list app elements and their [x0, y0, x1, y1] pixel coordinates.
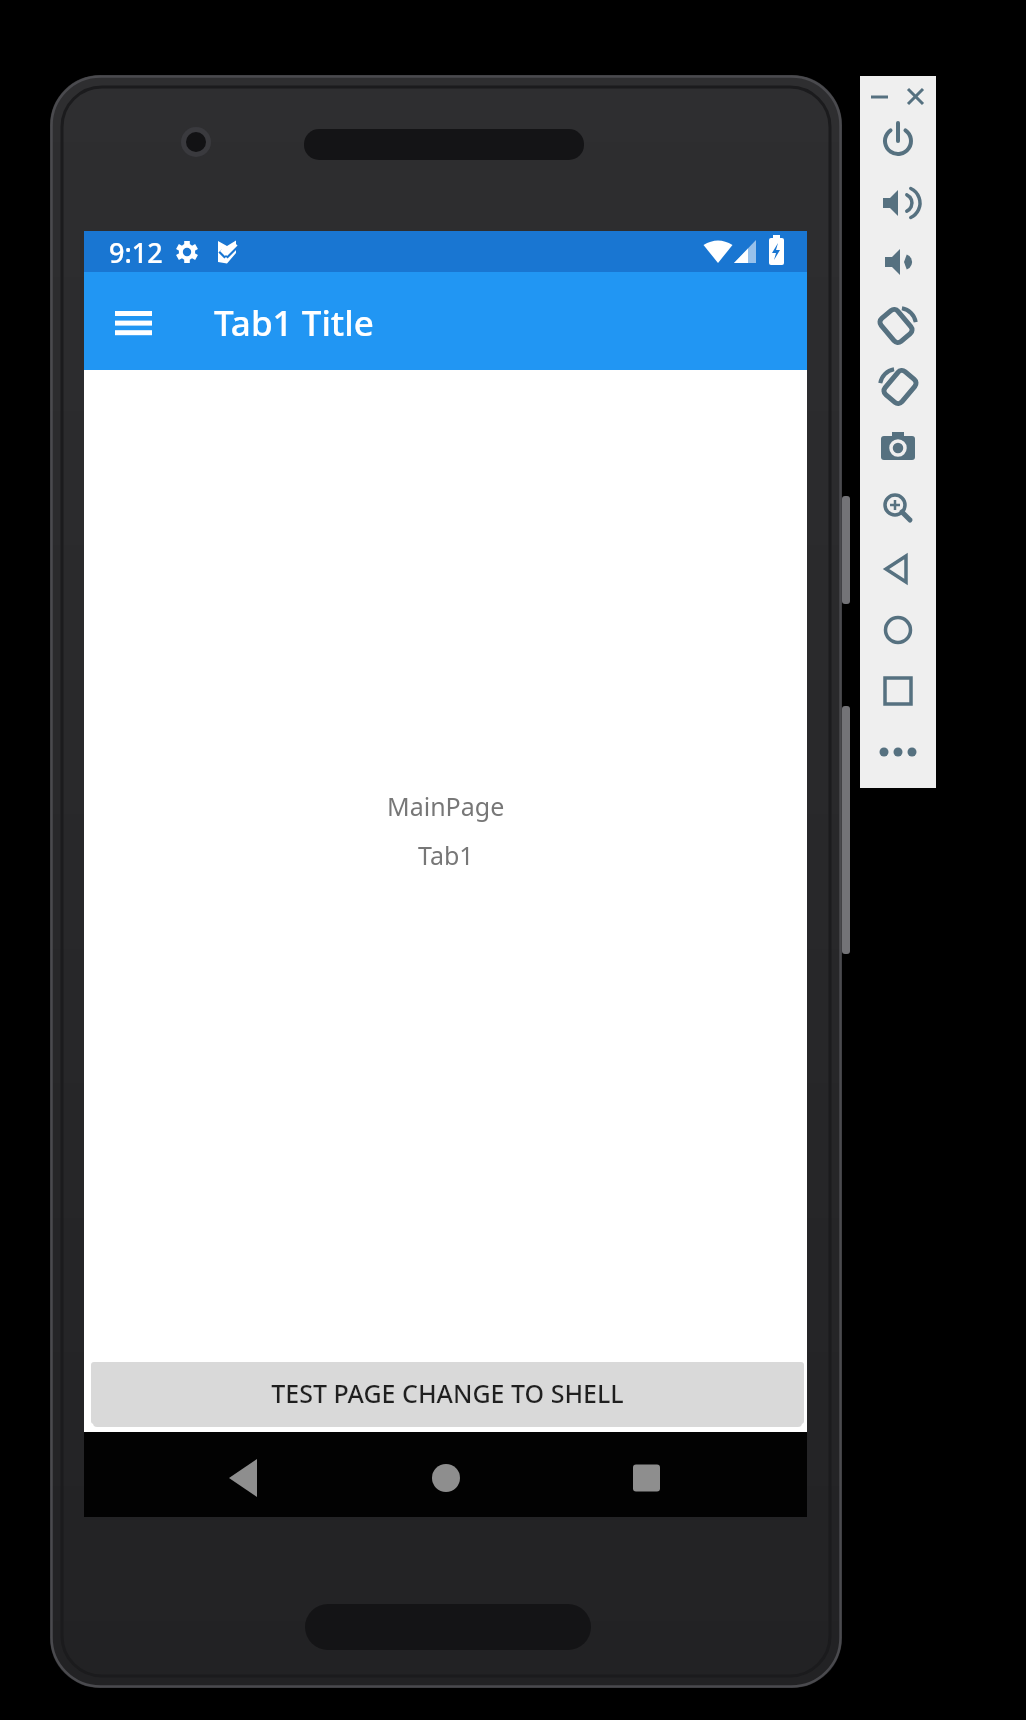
- button[interactable]: [102, 292, 164, 354]
- staticText: MainPage: [387, 789, 505, 823]
- button[interactable]: [876, 302, 920, 346]
- button[interactable]: [416, 1448, 476, 1508]
- button[interactable]: [617, 1448, 677, 1508]
- button[interactable]: [866, 82, 894, 110]
- button[interactable]: [876, 669, 920, 713]
- button[interactable]: [876, 486, 920, 530]
- button[interactable]: [876, 730, 920, 774]
- staticText: Tab1 Title: [214, 299, 374, 347]
- button[interactable]: [213, 1448, 273, 1508]
- button[interactable]: [876, 425, 920, 469]
- button[interactable]: TEST PAGE CHANGE TO SHELL: [91, 1362, 804, 1424]
- button[interactable]: [876, 181, 920, 225]
- button[interactable]: [876, 119, 920, 163]
- button[interactable]: [902, 82, 930, 110]
- button[interactable]: [876, 547, 920, 591]
- button[interactable]: [876, 608, 920, 652]
- button[interactable]: [876, 363, 920, 407]
- staticText: TEST PAGE CHANGE TO SHELL: [271, 1376, 624, 1410]
- staticText: Tab1: [418, 838, 474, 872]
- button[interactable]: [876, 240, 920, 284]
- staticText: 9:12: [109, 234, 163, 271]
